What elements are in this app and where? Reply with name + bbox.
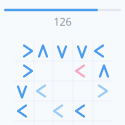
staticText: 126 xyxy=(53,14,71,29)
